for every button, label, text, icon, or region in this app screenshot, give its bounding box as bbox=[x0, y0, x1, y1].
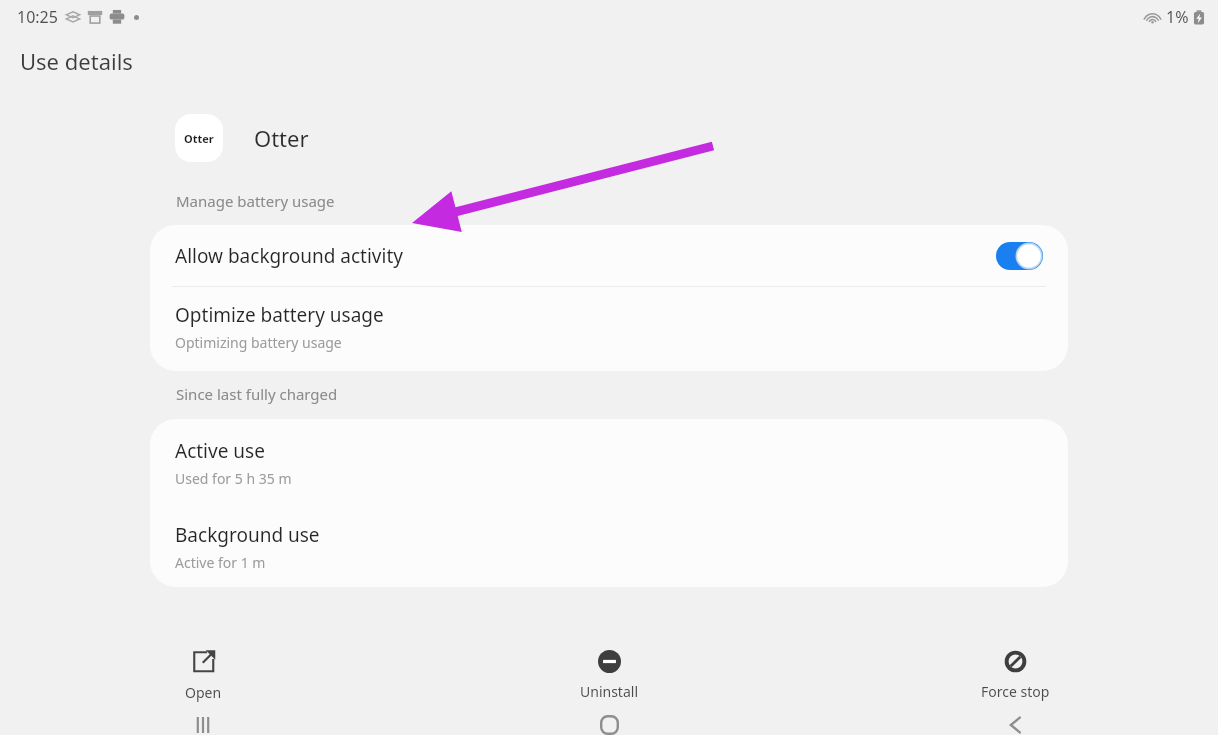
staticText: Uninstall bbox=[580, 682, 638, 701]
staticText: Force stop bbox=[981, 682, 1050, 701]
button[interactable]: Active use bbox=[150, 419, 1068, 503]
button[interactable]: Uninstall bbox=[406, 635, 812, 715]
staticText: Open bbox=[185, 683, 222, 702]
staticText: Used for 5 h 35 m bbox=[175, 469, 292, 488]
staticText: Background use bbox=[175, 522, 320, 548]
staticText: 10:25 bbox=[17, 6, 58, 28]
staticText: Allow background activity bbox=[175, 243, 403, 269]
staticText: Optimizing battery usage bbox=[175, 333, 342, 352]
button[interactable]: Force stop bbox=[812, 635, 1218, 715]
button[interactable]: Open bbox=[0, 635, 406, 715]
button[interactable]: Optimize battery usage bbox=[150, 287, 1068, 371]
staticText: Manage battery usage bbox=[176, 191, 335, 211]
button[interactable]: Home bbox=[406, 715, 812, 735]
staticText: 1% bbox=[1166, 6, 1189, 28]
button[interactable]: Background use bbox=[150, 503, 1068, 587]
button[interactable]: Recents bbox=[0, 715, 406, 735]
staticText: Otter bbox=[254, 123, 309, 153]
staticText: Since last fully charged bbox=[176, 384, 338, 404]
button[interactable]: Back bbox=[812, 715, 1218, 735]
staticText: Active for 1 m bbox=[175, 553, 266, 572]
staticText: Active use bbox=[175, 438, 265, 464]
staticText: Use details bbox=[20, 46, 133, 76]
button[interactable]: Allow background activity bbox=[150, 225, 1068, 286]
button[interactable]: Allow background activity bbox=[996, 242, 1043, 270]
staticText: Otter bbox=[184, 131, 214, 146]
staticText: Optimize battery usage bbox=[175, 302, 384, 328]
